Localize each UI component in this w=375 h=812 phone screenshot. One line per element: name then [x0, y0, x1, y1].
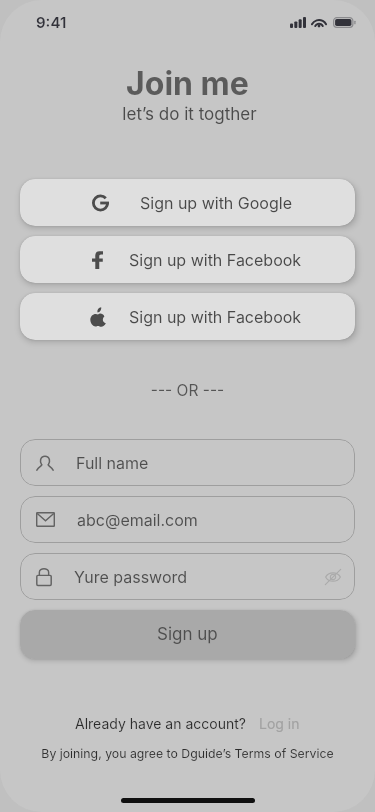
staticText: Join me: [0, 64, 375, 103]
button[interactable]: Sign up with Facebook: [20, 236, 355, 283]
button[interactable]: Sign up with Facebook: [20, 293, 355, 340]
button[interactable]: Show password: [325, 570, 341, 584]
staticText: Sign up with Facebook: [129, 307, 302, 326]
button[interactable]: Sign up with Google: [20, 179, 355, 226]
staticText: Sign up with Google: [140, 193, 292, 212]
button[interactable]: abc@email.com: [20, 496, 355, 543]
staticText: Sign up with Facebook: [129, 250, 302, 269]
button[interactable]: Full name: [20, 439, 355, 486]
staticText: Full name: [76, 453, 149, 472]
staticText: abc@email.com: [77, 510, 198, 529]
button[interactable]: Sign up: [20, 610, 355, 659]
staticText: Yure password: [74, 567, 188, 586]
staticText: 9:41: [36, 13, 67, 31]
staticText: By joining, you agree to Dguide’s Terms …: [0, 746, 375, 761]
staticText: Already have an account?: [75, 715, 246, 732]
button[interactable]: Log in: [259, 715, 300, 732]
staticText: --- OR ---: [0, 381, 375, 400]
staticText: Log in: [259, 715, 300, 732]
button[interactable]: Yure password: [20, 553, 355, 600]
staticText: Sign up: [157, 624, 218, 645]
staticText: let’s do it togther: [2, 104, 375, 125]
